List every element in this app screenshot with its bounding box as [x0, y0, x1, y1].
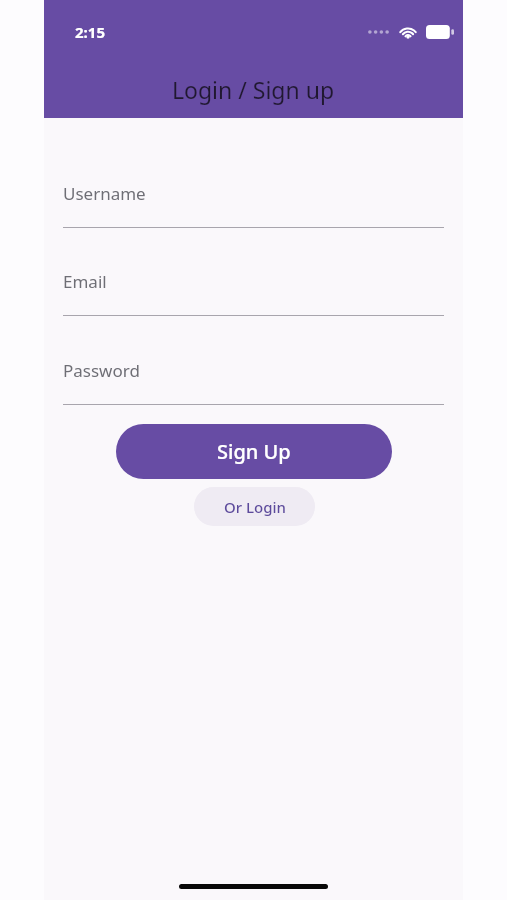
button[interactable]: Email — [63, 270, 444, 318]
staticText: Username — [63, 182, 146, 205]
button[interactable]: Sign Up — [116, 424, 392, 479]
staticText: Login / Sign up — [172, 74, 335, 105]
button[interactable]: Or Login — [194, 487, 315, 526]
other: Wi-Fi — [398, 24, 418, 39]
staticText: Email — [63, 270, 107, 293]
button[interactable]: Password — [63, 359, 444, 407]
staticText: Password — [63, 359, 140, 382]
staticText: 2:15 — [75, 22, 105, 42]
other: Battery — [426, 25, 454, 39]
staticText: Sign Up — [217, 438, 291, 465]
staticText: Or Login — [224, 497, 286, 517]
button[interactable]: Username — [63, 182, 444, 230]
